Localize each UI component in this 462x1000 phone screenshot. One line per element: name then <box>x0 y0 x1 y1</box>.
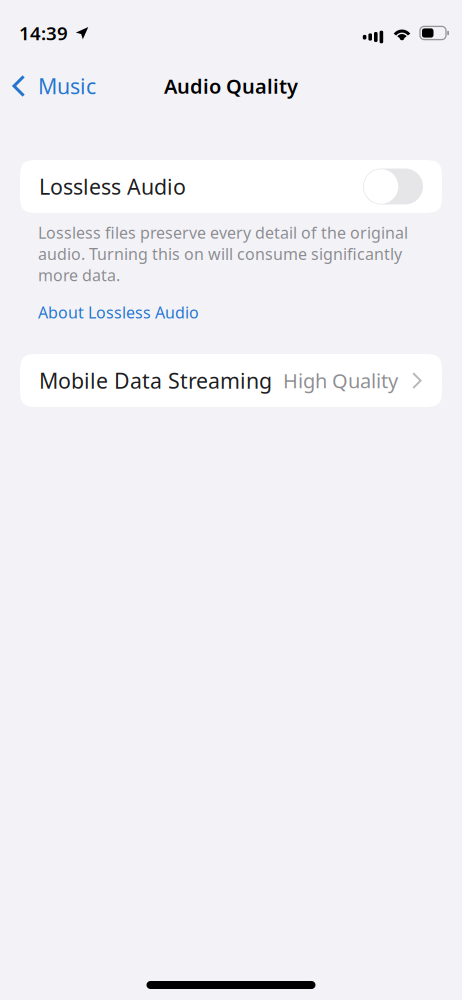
staticText: Music <box>38 72 96 100</box>
staticText: Lossless Audio <box>39 172 186 201</box>
staticText: Audio Quality <box>164 73 298 99</box>
staticText: Mobile Data Streaming <box>39 366 272 395</box>
button[interactable]: Lossless Audio <box>20 160 442 213</box>
button[interactable]: About Lossless Audio <box>38 302 199 323</box>
staticText: Lossless files preserve every detail of … <box>38 222 408 286</box>
staticText: 14:39 <box>19 21 68 45</box>
staticText: About Lossless Audio <box>38 302 199 323</box>
button[interactable]: Mobile Data Streaming <box>20 354 442 407</box>
staticText: High Quality <box>283 367 398 394</box>
button[interactable]: Back to Music <box>0 64 110 108</box>
